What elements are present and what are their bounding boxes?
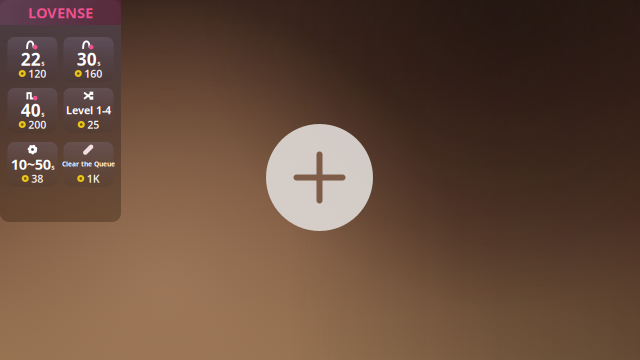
staticText: s — [41, 110, 44, 119]
staticText: 160 — [84, 66, 102, 81]
staticText: s — [97, 59, 100, 68]
staticText: 200 — [28, 117, 46, 132]
staticText: LOVENSE — [28, 3, 93, 22]
staticText: s — [41, 59, 44, 68]
button[interactable]: Level 1-4 — [63, 88, 113, 133]
staticText: 30 — [77, 47, 97, 70]
staticText: 40 — [21, 98, 41, 121]
button[interactable]: 10~50 — [7, 142, 57, 187]
button[interactable]: 40 — [7, 88, 57, 133]
staticText: 120 — [28, 66, 46, 81]
button[interactable]: 30 — [63, 37, 113, 82]
staticText: 10~50 — [11, 154, 51, 174]
button[interactable]: 22 — [7, 37, 57, 82]
staticText: 1K — [87, 171, 100, 186]
button[interactable]: Clear the Queue — [63, 142, 113, 187]
staticText: 25 — [87, 117, 99, 132]
staticText: Level 1-4 — [66, 103, 111, 117]
staticText: 38 — [31, 171, 43, 186]
staticText: Clear the Queue — [62, 160, 115, 168]
button[interactable]: Add — [266, 124, 373, 231]
staticText: s — [51, 163, 54, 172]
staticText: 22 — [21, 47, 41, 70]
